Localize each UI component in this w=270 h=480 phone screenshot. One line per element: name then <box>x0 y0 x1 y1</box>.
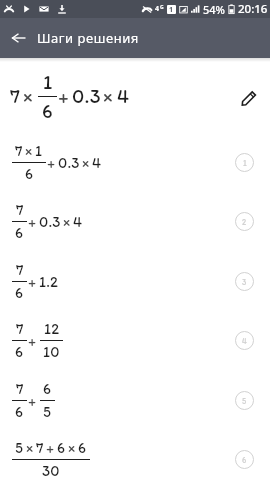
staticText: 6 <box>15 224 24 242</box>
staticText: 0.3 <box>39 213 61 231</box>
staticText: + <box>28 392 37 410</box>
staticText: G <box>160 4 164 11</box>
button[interactable]: Back <box>0 18 36 58</box>
button[interactable]: Edit <box>234 83 264 113</box>
staticText: 5 <box>15 439 24 457</box>
staticText: 6 <box>25 165 34 183</box>
staticText: 2 <box>242 217 247 227</box>
staticText: × <box>82 154 90 172</box>
staticText: 7 <box>15 142 23 160</box>
staticText: 7 <box>16 201 24 219</box>
staticText: 3 <box>242 277 247 287</box>
staticText: 1 <box>169 5 174 14</box>
button[interactable]: 7 <box>0 310 270 370</box>
staticText: 6 <box>78 439 87 457</box>
button[interactable]: 5 <box>0 429 270 480</box>
staticText: 5 <box>43 403 52 421</box>
staticText: 5 <box>242 396 247 406</box>
staticText: 4 <box>242 336 247 346</box>
staticText: + <box>47 154 56 172</box>
staticText: × <box>103 84 114 108</box>
staticText: + <box>58 84 69 108</box>
button[interactable]: 7 <box>0 132 270 192</box>
staticText: × <box>26 439 34 457</box>
staticText: 6 <box>15 284 24 302</box>
staticText: 6 <box>15 343 24 361</box>
staticText: 1 <box>243 158 247 168</box>
staticText: 4 <box>117 84 130 108</box>
staticText: 7 <box>10 84 21 108</box>
staticText: 6 <box>15 403 24 421</box>
staticText: × <box>63 213 71 231</box>
staticText: 7 <box>16 320 24 338</box>
button[interactable]: 7 <box>0 251 270 311</box>
staticText: × <box>68 439 76 457</box>
staticText: 1 <box>43 70 53 94</box>
staticText: 30 <box>42 462 60 480</box>
button[interactable]: 7 <box>0 191 270 251</box>
staticText: 0.3 <box>72 84 101 108</box>
staticText: 6 <box>43 380 52 398</box>
button[interactable]: 7 <box>0 370 270 430</box>
staticText: + <box>46 439 55 457</box>
staticText: 6 <box>57 439 66 457</box>
staticText: 10 <box>43 343 60 361</box>
staticText: 12 <box>44 320 60 338</box>
staticText: × <box>25 142 33 160</box>
staticText: 6 <box>42 99 53 122</box>
staticText: 54% <box>203 2 225 17</box>
staticText: + <box>28 273 37 291</box>
staticText: + <box>28 213 37 231</box>
staticText: 7 <box>36 439 44 457</box>
staticText: 20:16 <box>238 1 268 17</box>
staticText: 7 <box>16 261 24 279</box>
staticText: 4 <box>92 154 102 172</box>
staticText: 6 <box>242 455 247 465</box>
staticText: × <box>23 84 34 108</box>
staticText: 7 <box>16 380 24 398</box>
staticText: 4 <box>73 213 83 231</box>
staticText: Шаги решения <box>37 29 139 47</box>
staticText: 1.2 <box>39 273 59 291</box>
staticText: 4 <box>155 4 160 14</box>
staticText: 1 <box>35 142 43 160</box>
staticText: + <box>28 332 37 350</box>
staticText: 0.3 <box>58 154 80 172</box>
